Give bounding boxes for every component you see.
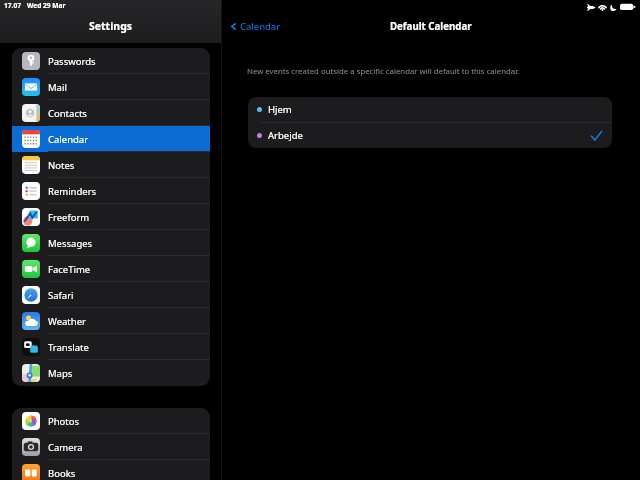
staticText: Camera (48, 441, 83, 454)
staticText: Photos (48, 415, 80, 428)
staticText: Weather (48, 315, 86, 328)
button[interactable]: Reminders (12, 178, 210, 204)
staticText: Arbejde (268, 129, 303, 142)
staticText: 17.07 (4, 1, 21, 10)
button[interactable]: Camera (12, 434, 210, 460)
button[interactable]: Hjem (248, 97, 612, 122)
button[interactable]: FaceTime (12, 256, 210, 282)
staticText: Freeform (48, 211, 90, 224)
staticText: Books (48, 467, 76, 480)
staticText: Passwords (48, 55, 96, 68)
staticText: New events created outside a specific ca… (247, 66, 520, 77)
staticText: Safari (48, 289, 74, 302)
staticText: Settings (89, 19, 133, 33)
button[interactable]: Safari (12, 282, 210, 308)
staticText: Calendar (48, 133, 89, 146)
staticText: Messages (48, 237, 93, 250)
button[interactable]: Photos (12, 408, 210, 434)
button[interactable]: Notes (12, 152, 210, 178)
staticText: Wed 29 Mar (27, 1, 66, 10)
button[interactable]: Books (12, 460, 210, 480)
button[interactable]: Calendar (12, 126, 210, 152)
button[interactable]: Translate (12, 334, 210, 360)
button[interactable]: Calendar (227, 17, 283, 36)
staticText: Contacts (48, 107, 87, 120)
staticText: Notes (48, 159, 75, 172)
staticText: Default Calendar (390, 20, 472, 33)
staticText: Reminders (48, 185, 97, 198)
button[interactable]: Weather (12, 308, 210, 334)
button[interactable]: Freeform (12, 204, 210, 230)
button[interactable]: Contacts (12, 100, 210, 126)
staticText: FaceTime (48, 263, 91, 276)
button[interactable]: Mail (12, 74, 210, 100)
staticText: Maps (48, 367, 73, 380)
button[interactable]: Maps (12, 360, 210, 386)
button[interactable]: Arbejde (248, 123, 612, 148)
button[interactable]: Messages (12, 230, 210, 256)
staticText: Translate (48, 341, 89, 354)
other: Selected (590, 129, 603, 142)
staticText: Calendar (240, 20, 281, 33)
staticText: Mail (48, 81, 67, 94)
button[interactable]: Passwords (12, 48, 210, 74)
staticText: Hjem (268, 103, 292, 116)
